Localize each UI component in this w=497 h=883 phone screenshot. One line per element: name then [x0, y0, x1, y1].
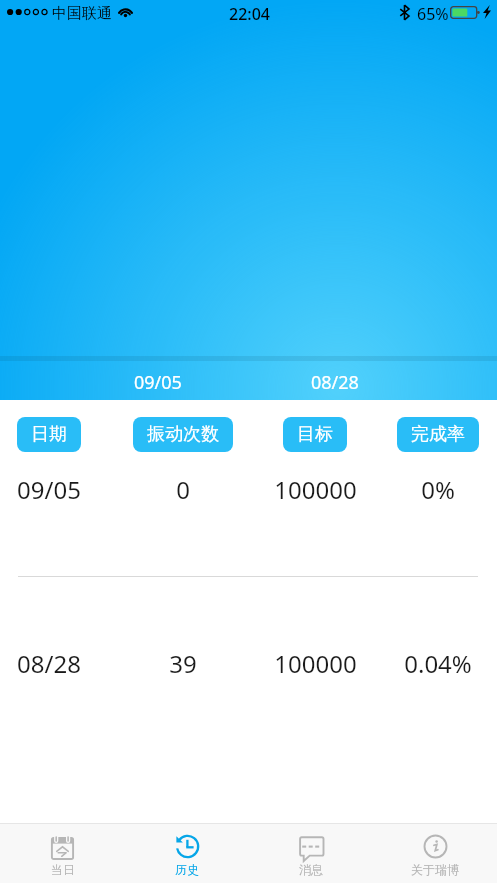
other: Today [50, 834, 75, 859]
staticText: 0% [421, 473, 455, 506]
staticText: 振动次数 [147, 423, 219, 446]
staticText: 消息 [299, 862, 323, 877]
staticText: 39 [169, 647, 197, 680]
staticText: 09/05 [134, 370, 182, 395]
staticText: 22:04 [229, 3, 270, 25]
staticText: 0.04% [404, 647, 472, 680]
button[interactable]: 完成率 [397, 417, 479, 452]
staticText: 中国联通 [52, 4, 112, 23]
button[interactable]: Today [0, 824, 125, 883]
staticText: 关于瑞博 [411, 862, 459, 877]
button[interactable]: Messages [249, 824, 373, 883]
staticText: 100000 [274, 473, 357, 506]
other: History [175, 834, 200, 859]
staticText: 日期 [31, 423, 67, 446]
staticText: 08/28 [311, 370, 359, 395]
other: Messages [299, 834, 324, 859]
staticText: 目标 [297, 423, 333, 446]
staticText: 100000 [274, 647, 357, 680]
staticText: 当日 [51, 862, 75, 877]
staticText: 09/05 [17, 473, 81, 506]
button[interactable]: 日期 [17, 417, 81, 452]
button[interactable]: History [125, 824, 249, 883]
button[interactable]: 振动次数 [133, 417, 233, 452]
staticText: 0 [176, 473, 190, 506]
staticText: 65% [417, 3, 449, 25]
staticText: 08/28 [17, 647, 81, 680]
other: About [423, 834, 448, 859]
staticText: 历史 [175, 862, 199, 877]
button[interactable]: About [373, 824, 497, 883]
staticText: 完成率 [411, 423, 465, 446]
button[interactable]: 目标 [283, 417, 347, 452]
